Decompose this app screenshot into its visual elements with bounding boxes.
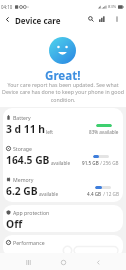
button[interactable]: Usage statistics	[96, 13, 107, 24]
staticText: available	[39, 191, 59, 197]
staticText: App protection	[13, 209, 50, 216]
button[interactable]: Search	[85, 13, 96, 24]
button[interactable]: Recent apps	[21, 255, 35, 269]
button[interactable]: More options	[111, 13, 122, 24]
staticText: / 12 GB	[102, 191, 119, 197]
button[interactable]: Home	[56, 255, 70, 269]
staticText: 164.5 GB	[6, 153, 50, 167]
button[interactable]: Back	[91, 255, 105, 269]
staticText: Great!	[45, 68, 81, 84]
staticText: Storage	[13, 145, 32, 152]
staticText: 04:10	[1, 4, 13, 10]
staticText: / 256 GB	[99, 160, 119, 166]
staticText: Off	[6, 217, 23, 231]
staticText: Your care report has been updated. See w…	[0, 81, 126, 104]
staticText: 83%	[108, 4, 117, 10]
staticText: available	[51, 160, 71, 166]
staticText: Performance	[13, 239, 45, 246]
staticText: 6.2 GB	[6, 184, 38, 198]
button[interactable]: Navigate up	[1, 13, 14, 26]
staticText: 91.5 GB	[82, 160, 99, 166]
button[interactable]: Memory	[3, 170, 123, 201]
staticText: left	[46, 129, 54, 135]
staticText: Battery	[13, 114, 31, 121]
staticText: 4.4 GB	[87, 191, 102, 197]
staticText: Memory	[13, 176, 34, 183]
button[interactable]: Performance	[3, 235, 123, 257]
staticText: 83% available	[89, 129, 119, 135]
staticText: Device care	[15, 15, 61, 26]
staticText: 3 d 11 h	[6, 122, 45, 136]
button[interactable]: Battery	[3, 108, 123, 139]
button[interactable]: Storage	[3, 139, 123, 170]
button[interactable]: App protection	[3, 205, 123, 232]
